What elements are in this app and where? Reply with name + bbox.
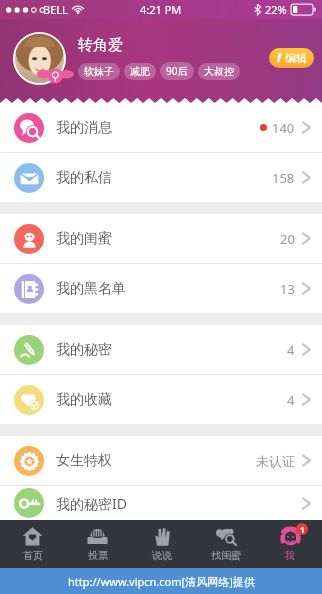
- button[interactable]: 我的收藏: [0, 375, 322, 424]
- staticText: 我的秘密: [56, 341, 112, 359]
- button[interactable]: 我的秘密ID: [0, 486, 322, 520]
- button[interactable]: 减肥: [124, 63, 156, 80]
- staticText: 我的私信: [56, 169, 112, 187]
- staticText: 减肥: [130, 65, 150, 78]
- staticText: 我的闺蜜: [56, 230, 112, 248]
- button[interactable]: 1: [258, 520, 322, 568]
- button[interactable]: 女生特权: [0, 436, 322, 485]
- button[interactable]: 我的黑名单: [0, 264, 322, 313]
- staticText: 大叔控: [204, 65, 234, 78]
- button[interactable]: 我的私信: [0, 153, 322, 202]
- staticText: BELL: [43, 2, 68, 17]
- button[interactable]: 90后: [160, 62, 194, 80]
- staticText: 158: [272, 169, 295, 187]
- staticText: 20: [280, 230, 295, 248]
- staticText: 4:21 PM: [140, 2, 182, 17]
- button[interactable]: 投票: [65, 520, 130, 568]
- button[interactable]: 编辑: [269, 48, 314, 68]
- staticText: 4: [287, 341, 295, 359]
- staticText: 140: [272, 119, 295, 137]
- staticText: 首页: [23, 549, 43, 562]
- staticText: 4: [287, 391, 295, 409]
- staticText: 未认证: [256, 453, 295, 469]
- button[interactable]: 我的秘密: [0, 325, 322, 374]
- staticText: 编辑: [285, 51, 307, 65]
- staticText: 我的消息: [56, 119, 112, 137]
- button[interactable]: Profile photo: [13, 32, 66, 85]
- staticText: 软妹子: [84, 65, 114, 78]
- staticText: 90后: [166, 64, 188, 78]
- staticText: 转角爱: [78, 36, 123, 55]
- staticText: 我: [285, 549, 295, 562]
- button[interactable]: 找闺蜜: [194, 520, 258, 568]
- staticText: 22%: [265, 2, 287, 17]
- staticText: 我的黑名单: [56, 280, 126, 298]
- button[interactable]: 说说: [130, 520, 194, 568]
- button[interactable]: 我的闺蜜: [0, 214, 322, 263]
- staticText: 我的秘密ID: [56, 494, 127, 513]
- staticText: 女生特权: [56, 452, 112, 470]
- staticText: 找闺蜜: [211, 549, 241, 562]
- staticText: 我的收藏: [56, 391, 112, 409]
- staticText: http://www.vipcn.com[清风网络]提供: [68, 574, 255, 589]
- button[interactable]: 软妹子: [78, 63, 120, 80]
- button[interactable]: 大叔控: [198, 63, 240, 80]
- staticText: 1: [300, 524, 305, 535]
- staticText: 说说: [152, 549, 172, 562]
- button[interactable]: 我的消息: [0, 103, 322, 152]
- staticText: 13: [280, 280, 295, 298]
- staticText: 投票: [88, 549, 108, 562]
- button[interactable]: 首页: [0, 520, 65, 568]
